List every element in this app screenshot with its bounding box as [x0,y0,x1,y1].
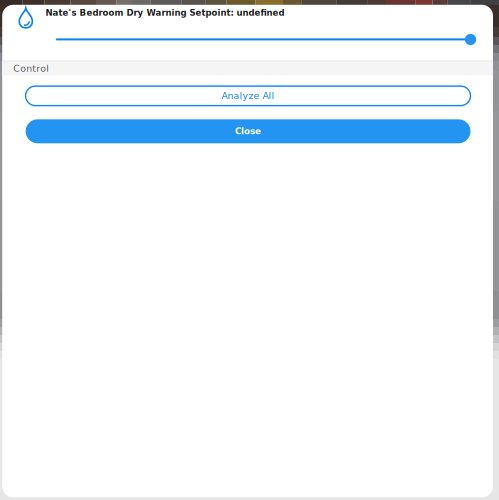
staticText: Analyze All [221,90,274,101]
staticText: Close [235,126,261,136]
staticText: Control [13,63,49,74]
button[interactable]: Close [26,119,470,143]
staticText: Nate's Bedroom Dry Warning Setpoint: und… [45,8,284,18]
button[interactable]: Analyze All [26,86,470,106]
